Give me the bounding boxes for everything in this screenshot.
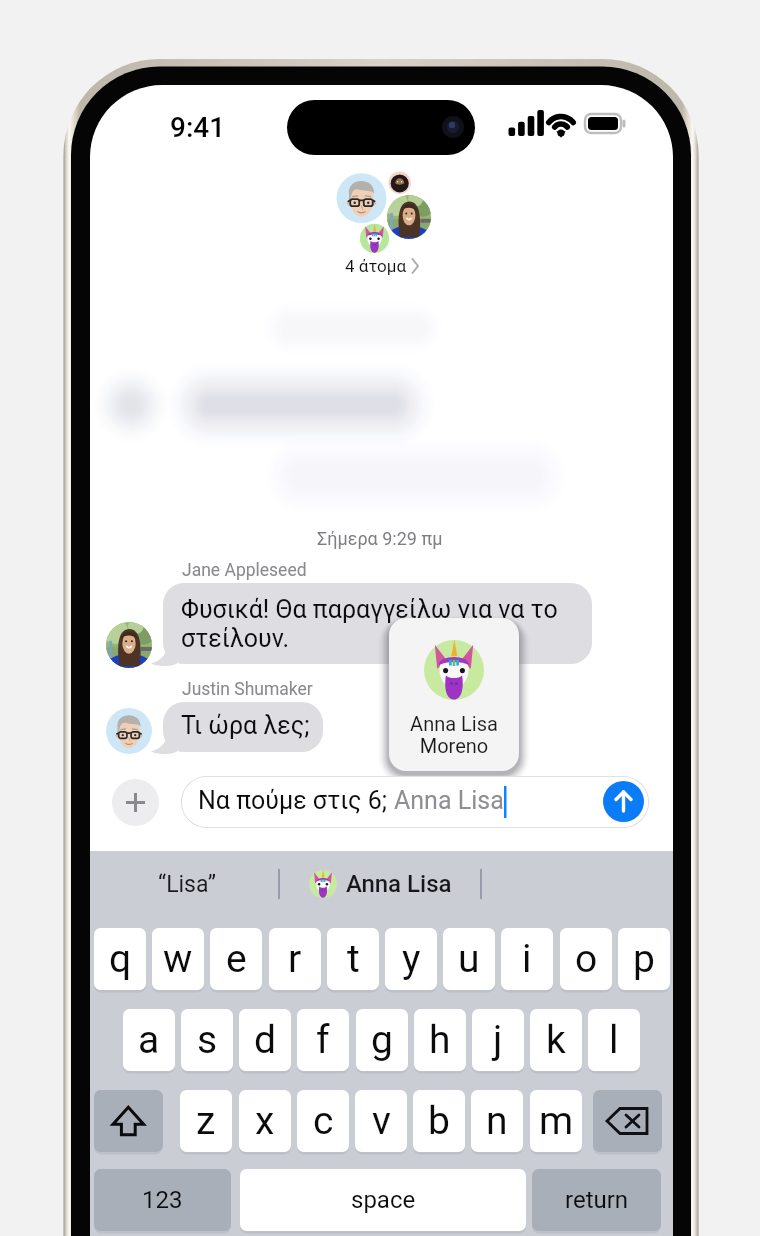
staticText: return	[565, 1186, 629, 1214]
button[interactable]: r	[269, 928, 321, 990]
button[interactable]: Να πούμε στις 6;	[181, 776, 649, 828]
button[interactable]: v	[355, 1090, 407, 1152]
staticText: Anna Lisa	[346, 870, 452, 898]
button[interactable]: f	[297, 1009, 349, 1071]
button[interactable]: Shift	[94, 1090, 163, 1152]
button[interactable]: Backspace	[593, 1090, 662, 1152]
staticText: q	[109, 936, 132, 982]
staticText: a	[138, 1017, 160, 1063]
button[interactable]: Add attachment	[112, 779, 159, 826]
staticText: Σήμερα 9:29 πμ	[317, 528, 443, 549]
button[interactable]: b	[413, 1090, 465, 1152]
button[interactable]: n	[471, 1090, 523, 1152]
button[interactable]: e	[210, 928, 262, 990]
staticText: f	[316, 1017, 330, 1063]
button[interactable]: a	[123, 1009, 175, 1071]
button[interactable]: Group participants	[331, 168, 435, 254]
staticText: Φυσικά! Θα παραγγείλω για να το στείλουν…	[181, 595, 601, 653]
staticText: space	[351, 1186, 416, 1214]
staticText: s	[197, 1017, 218, 1063]
staticText: “Lisa”	[158, 871, 216, 898]
button[interactable]: space	[240, 1169, 526, 1231]
button[interactable]: z	[180, 1090, 232, 1152]
button[interactable]: h	[414, 1009, 466, 1071]
button[interactable]: u	[443, 928, 495, 990]
button[interactable]: m	[530, 1090, 582, 1152]
button[interactable]: c	[297, 1090, 349, 1152]
staticText: j	[493, 1017, 503, 1063]
button[interactable]: w	[152, 928, 204, 990]
staticText: e	[226, 936, 247, 982]
button[interactable]: i	[501, 928, 553, 990]
staticText: r	[288, 936, 302, 982]
button[interactable]: s	[181, 1009, 233, 1071]
button[interactable]: Mention Anna Lisa Moreno	[389, 618, 519, 771]
button[interactable]: 123	[94, 1169, 231, 1231]
staticText: k	[546, 1017, 566, 1063]
staticText: z	[196, 1098, 216, 1144]
staticText: u	[458, 936, 480, 982]
staticText: 4 άτομα	[345, 256, 407, 276]
staticText: Να πούμε στις 6;	[198, 786, 394, 815]
staticText: Anna Lisa	[394, 786, 504, 815]
button[interactable]: o	[560, 928, 612, 990]
staticText: w	[163, 936, 193, 982]
button[interactable]: x	[239, 1090, 291, 1152]
button[interactable]: l	[588, 1009, 640, 1071]
staticText: n	[486, 1098, 508, 1144]
staticText: Anna Lisa Moreno	[410, 712, 498, 758]
staticText: x	[255, 1098, 275, 1144]
staticText: o	[575, 936, 598, 982]
button[interactable]: k	[530, 1009, 582, 1071]
staticText: h	[429, 1017, 451, 1063]
button[interactable]: d	[239, 1009, 291, 1071]
button[interactable]: Anna Lisa	[282, 853, 478, 915]
button[interactable]: 4 άτομα	[345, 254, 421, 278]
button[interactable]: q	[94, 928, 146, 990]
staticText: c	[313, 1098, 334, 1144]
staticText: 123	[142, 1186, 183, 1214]
staticText: Justin Shumaker	[182, 679, 313, 700]
button[interactable]: y	[385, 928, 437, 990]
staticText: v	[372, 1098, 391, 1144]
button[interactable]: t	[327, 928, 379, 990]
button[interactable]: j	[472, 1009, 524, 1071]
button[interactable]: return	[532, 1169, 661, 1231]
staticText: Τι ώρα λες;	[181, 711, 310, 740]
staticText: b	[428, 1098, 450, 1144]
staticText: p	[633, 936, 655, 982]
staticText: y	[402, 936, 421, 982]
staticText: g	[371, 1017, 393, 1063]
staticText: Jane Appleseed	[182, 560, 307, 581]
staticText: t	[347, 936, 360, 982]
staticText: m	[539, 1098, 574, 1144]
button[interactable]: “Lisa”	[94, 853, 280, 915]
staticText: d	[254, 1017, 276, 1063]
button[interactable]: p	[618, 928, 670, 990]
staticText: 9:41	[170, 111, 226, 144]
button[interactable]: g	[356, 1009, 408, 1071]
staticText: i	[522, 936, 532, 982]
button[interactable]: Send	[603, 781, 644, 822]
staticText: l	[609, 1017, 619, 1063]
